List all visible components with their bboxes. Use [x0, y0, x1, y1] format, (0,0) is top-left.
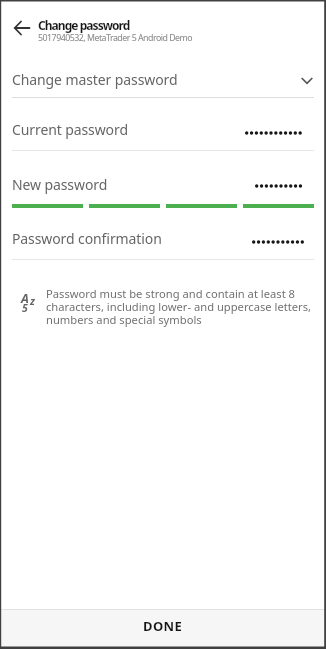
staticText: Current password: [12, 120, 128, 139]
staticText: Password confirmation: [12, 229, 162, 248]
staticText: 5: [22, 301, 28, 315]
staticText: A: [21, 290, 29, 307]
staticText: Change password: [38, 17, 130, 33]
button[interactable]: [0, 98, 326, 150]
button[interactable]: DONE: [0, 610, 326, 649]
staticText: Change master password: [12, 70, 178, 89]
staticText: 5017940532, MetaTrader 5 Android Demo: [38, 32, 193, 44]
button[interactable]: [0, 209, 326, 259]
staticText: Password must be strong and contain at l…: [46, 286, 312, 327]
staticText: DONE: [143, 617, 183, 635]
button[interactable]: [6, 12, 38, 44]
button[interactable]: [0, 55, 326, 97]
button[interactable]: [0, 151, 326, 203]
staticText: New password: [12, 175, 108, 194]
staticText: z: [30, 294, 35, 308]
